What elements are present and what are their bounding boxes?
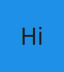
staticText: Hi — [20, 21, 43, 51]
